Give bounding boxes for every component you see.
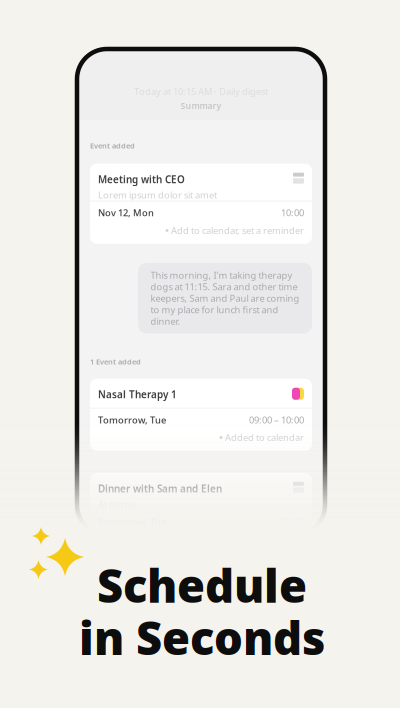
staticText: Schedule bbox=[97, 555, 307, 615]
staticText: in Seconds bbox=[79, 607, 325, 667]
staticText: 1 Event added bbox=[90, 357, 141, 367]
button[interactable]: Dinner with Sam and Elen bbox=[90, 473, 312, 553]
staticText: Lorem ipsum dolor sit amet bbox=[98, 189, 217, 201]
staticText: Today at 10:15 AM · Daily digest bbox=[134, 85, 268, 98]
button[interactable]: Meeting with CEO bbox=[90, 164, 312, 244]
staticText: Nov 12, Mon bbox=[98, 206, 154, 219]
staticText: Nasal Therapy 1 bbox=[98, 388, 177, 401]
staticText: Summary bbox=[180, 100, 221, 111]
staticText: Add to calendar, set a reminder bbox=[171, 224, 304, 237]
staticText: 09:00 – 10:00 bbox=[249, 413, 304, 426]
staticText: Tomorrow, Tue bbox=[98, 413, 166, 426]
staticText: Added to calendar bbox=[225, 431, 304, 444]
button[interactable]: Nasal Therapy 1 bbox=[90, 379, 312, 451]
staticText: This morning, I'm taking therapy dogs at… bbox=[150, 269, 299, 328]
staticText: Event added bbox=[90, 140, 135, 151]
staticText: Dinner with Sam and Elen bbox=[98, 482, 222, 495]
staticText: 10:00 bbox=[281, 206, 304, 219]
staticText: Meeting with CEO bbox=[98, 173, 185, 186]
